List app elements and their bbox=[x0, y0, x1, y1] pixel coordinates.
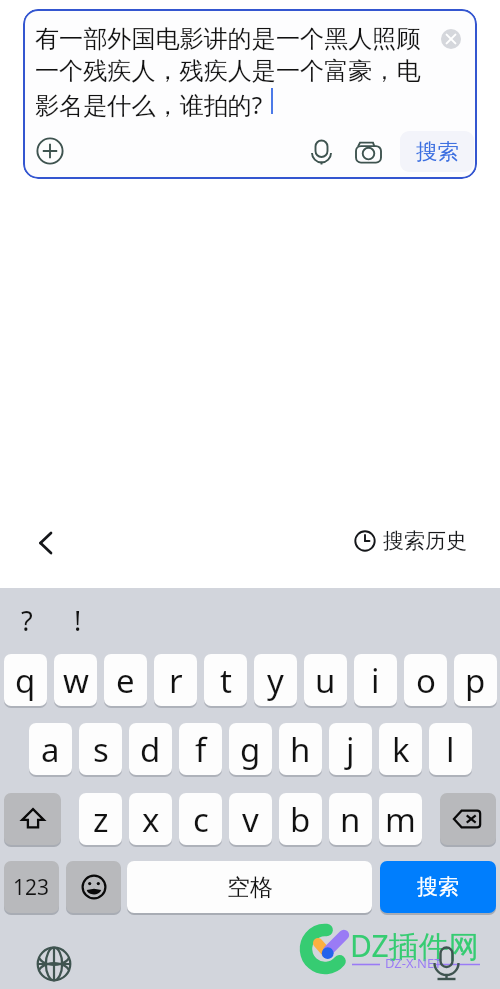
button[interactable]: r bbox=[154, 654, 197, 706]
staticText: w bbox=[63, 658, 89, 703]
button[interactable]: Voice input bbox=[428, 946, 465, 983]
button[interactable]: Camera search bbox=[354, 137, 383, 166]
button[interactable]: Emoji bbox=[66, 861, 121, 913]
button[interactable]: 空格 bbox=[127, 861, 372, 913]
staticText: l bbox=[446, 727, 455, 772]
staticText: 搜索 bbox=[416, 138, 459, 165]
staticText: s bbox=[93, 727, 109, 772]
button[interactable]: a bbox=[29, 723, 72, 775]
button[interactable]: ! bbox=[61, 602, 95, 636]
staticText: 搜索历史 bbox=[383, 528, 467, 554]
staticText: y bbox=[267, 658, 284, 703]
staticText: g bbox=[240, 727, 261, 772]
staticText: r bbox=[169, 658, 183, 703]
button[interactable]: k bbox=[379, 723, 422, 775]
button[interactable]: b bbox=[279, 793, 322, 845]
staticText: q bbox=[15, 658, 36, 703]
button[interactable]: j bbox=[329, 723, 372, 775]
button[interactable]: v bbox=[229, 793, 272, 845]
button[interactable]: i bbox=[354, 654, 397, 706]
staticText: m bbox=[385, 797, 416, 842]
button[interactable]: n bbox=[329, 793, 372, 845]
button[interactable]: p bbox=[454, 654, 497, 706]
staticText: n bbox=[340, 797, 361, 842]
staticText: z bbox=[93, 797, 109, 842]
button[interactable]: x bbox=[129, 793, 172, 845]
button[interactable]: q bbox=[4, 654, 47, 706]
button[interactable]: Shift bbox=[4, 793, 61, 845]
button[interactable]: o bbox=[404, 654, 447, 706]
staticText: d bbox=[140, 727, 161, 772]
staticText: a bbox=[41, 727, 60, 772]
staticText: i bbox=[371, 658, 380, 703]
staticText: f bbox=[195, 727, 207, 772]
button[interactable]: 搜索 bbox=[380, 861, 496, 913]
button[interactable]: 搜索 bbox=[400, 131, 474, 172]
button[interactable]: g bbox=[229, 723, 272, 775]
staticText: b bbox=[290, 797, 311, 842]
staticText: 空格 bbox=[227, 873, 273, 902]
staticText: 有一部外国电影讲的是一个黑人照顾 一个残疾人，残疾人是一个富豪，电 影名是什么，… bbox=[35, 24, 421, 121]
button[interactable]: ? bbox=[10, 602, 44, 636]
button[interactable]: Clear text bbox=[441, 29, 461, 49]
button[interactable]: Voice search bbox=[307, 137, 336, 166]
button[interactable]: 123 bbox=[4, 861, 59, 913]
staticText: j bbox=[346, 727, 355, 772]
staticText: e bbox=[116, 658, 135, 703]
button[interactable]: s bbox=[79, 723, 122, 775]
button[interactable]: h bbox=[279, 723, 322, 775]
staticText: ? bbox=[21, 602, 33, 636]
staticText: 搜索 bbox=[417, 874, 459, 900]
staticText: x bbox=[142, 797, 160, 842]
button[interactable]: f bbox=[179, 723, 222, 775]
button[interactable]: Switch language bbox=[35, 945, 73, 983]
button[interactable]: u bbox=[304, 654, 347, 706]
staticText: p bbox=[465, 658, 486, 703]
staticText: t bbox=[220, 658, 232, 703]
button[interactable]: y bbox=[254, 654, 297, 706]
button[interactable]: w bbox=[54, 654, 97, 706]
button[interactable]: 搜索历史 bbox=[350, 524, 471, 558]
button[interactable]: c bbox=[179, 793, 222, 845]
button[interactable]: e bbox=[104, 654, 147, 706]
button[interactable]: d bbox=[129, 723, 172, 775]
button[interactable]: t bbox=[204, 654, 247, 706]
staticText: h bbox=[290, 727, 311, 772]
staticText: u bbox=[315, 658, 336, 703]
staticText: c bbox=[193, 797, 209, 842]
staticText: 123 bbox=[13, 873, 50, 902]
button[interactable]: Delete bbox=[440, 793, 496, 845]
staticText: DZ-X.NET bbox=[385, 954, 442, 972]
staticText: ! bbox=[74, 602, 82, 636]
staticText: o bbox=[416, 658, 436, 703]
staticText: k bbox=[392, 727, 410, 772]
staticText: DZ插件网 bbox=[350, 925, 479, 966]
staticText: v bbox=[242, 797, 259, 842]
button[interactable]: z bbox=[79, 793, 122, 845]
button[interactable]: Add attachment bbox=[34, 135, 66, 167]
button[interactable]: m bbox=[379, 793, 422, 845]
button[interactable]: Back bbox=[28, 521, 68, 561]
button[interactable]: l bbox=[429, 723, 472, 775]
